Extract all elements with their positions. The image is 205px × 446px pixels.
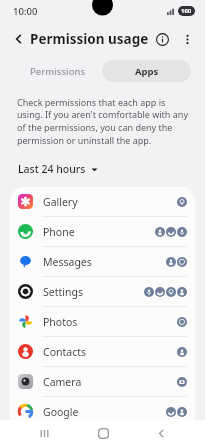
- button[interactable]: Meet: [10, 426, 195, 446]
- staticText: Settings: [43, 285, 144, 299]
- staticText: Camera: [43, 375, 177, 389]
- button[interactable]: Back: [6, 26, 32, 52]
- staticText: Gallery: [43, 195, 177, 209]
- button[interactable]: Recent apps: [29, 420, 59, 446]
- button[interactable]: Back: [146, 420, 176, 446]
- button[interactable]: Last 24 hours: [16, 160, 100, 178]
- button[interactable]: Gallery: [10, 187, 195, 216]
- staticText: Phone: [43, 225, 155, 239]
- button[interactable]: Apps: [102, 60, 191, 82]
- button[interactable]: Camera: [10, 366, 195, 396]
- staticText: 100: [181, 7, 192, 15]
- button[interactable]: Google: [10, 396, 195, 426]
- staticText: Last 24 hours: [18, 162, 86, 176]
- button[interactable]: More options: [175, 27, 199, 51]
- button[interactable]: Messages: [10, 246, 195, 276]
- staticText: Photos: [43, 315, 177, 329]
- staticText: Contacts: [43, 345, 177, 359]
- button[interactable]: Phone: [10, 216, 195, 246]
- staticText: Permission usage: [30, 30, 149, 48]
- staticText: Messages: [43, 255, 166, 269]
- button[interactable]: Home: [88, 420, 118, 446]
- button[interactable]: Settings: [10, 276, 195, 306]
- staticText: Check permissions that each app is using…: [17, 96, 190, 147]
- button[interactable]: Photos: [10, 306, 195, 336]
- staticText: 10:00: [13, 5, 38, 18]
- staticText: Permissions: [30, 65, 86, 78]
- button[interactable]: Contacts: [10, 336, 195, 366]
- button[interactable]: Information: [149, 26, 175, 52]
- staticText: Google: [43, 405, 166, 419]
- staticText: Meet: [43, 430, 177, 444]
- staticText: Apps: [135, 65, 159, 78]
- button[interactable]: Permissions: [14, 60, 102, 82]
